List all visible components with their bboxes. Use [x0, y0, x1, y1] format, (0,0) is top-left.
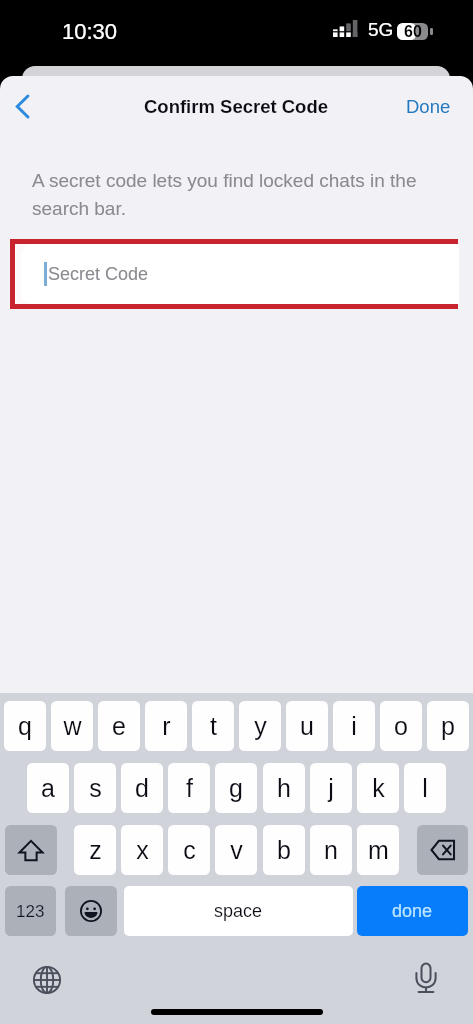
staticText: m	[368, 836, 389, 864]
staticText: t	[210, 712, 217, 740]
staticText: d	[135, 774, 149, 802]
staticText: c	[183, 836, 196, 864]
staticText: 10:30	[62, 19, 118, 44]
button[interactable]: Numbers	[5, 886, 56, 936]
button[interactable]: Emoji	[65, 886, 117, 936]
staticText: r	[162, 712, 171, 740]
button[interactable]: Shift	[5, 825, 57, 875]
staticText: l	[422, 774, 428, 802]
staticText: space	[214, 901, 263, 921]
button[interactable]: n	[310, 825, 352, 875]
staticText: o	[394, 712, 408, 740]
button[interactable]: w	[51, 701, 93, 751]
staticText: n	[324, 836, 338, 864]
button[interactable]: c	[168, 825, 210, 875]
button[interactable]: u	[286, 701, 328, 751]
button[interactable]: m	[357, 825, 399, 875]
button[interactable]: e	[98, 701, 140, 751]
staticText: 60	[404, 23, 422, 40]
button[interactable]: g	[215, 763, 257, 813]
button[interactable]: Back	[0, 76, 44, 136]
staticText: a	[41, 774, 55, 802]
button[interactable]: x	[121, 825, 163, 875]
staticText: s	[89, 774, 102, 802]
staticText: 123	[16, 902, 45, 921]
staticText: h	[277, 774, 291, 802]
button[interactable]: b	[263, 825, 305, 875]
staticText: f	[186, 774, 193, 802]
staticText: z	[89, 836, 102, 864]
staticText: j	[328, 774, 334, 802]
staticText: i	[351, 712, 357, 740]
button[interactable]: l	[404, 763, 446, 813]
button[interactable]: Change keyboard	[27, 960, 67, 1000]
staticText: Secret Code	[48, 264, 149, 284]
button[interactable]: h	[263, 763, 305, 813]
staticText: x	[136, 836, 149, 864]
staticText: k	[372, 774, 385, 802]
staticText: w	[63, 712, 82, 740]
staticText: e	[112, 712, 126, 740]
button[interactable]: d	[121, 763, 163, 813]
staticText: 5G	[368, 19, 394, 40]
button[interactable]: v	[215, 825, 257, 875]
button[interactable]: j	[310, 763, 352, 813]
button[interactable]: s	[74, 763, 116, 813]
button[interactable]: t	[192, 701, 234, 751]
staticText: u	[300, 712, 314, 740]
button[interactable]: Delete	[417, 825, 468, 875]
button[interactable]: Secret Code	[15, 244, 453, 304]
staticText: A secret code lets you find locked chats…	[32, 170, 424, 219]
button[interactable]: o	[380, 701, 422, 751]
staticText: v	[230, 836, 243, 864]
staticText: y	[254, 712, 267, 740]
button[interactable]: z	[74, 825, 116, 875]
button[interactable]: k	[357, 763, 399, 813]
button[interactable]: r	[145, 701, 187, 751]
staticText: p	[441, 712, 455, 740]
button[interactable]: a	[27, 763, 69, 813]
button[interactable]: Dictate	[406, 958, 446, 998]
button[interactable]: q	[4, 701, 46, 751]
button[interactable]: y	[239, 701, 281, 751]
button[interactable]: i	[333, 701, 375, 751]
staticText: Done	[406, 96, 451, 117]
button[interactable]: space	[124, 886, 353, 936]
button[interactable]: Done	[398, 90, 459, 123]
button[interactable]: f	[168, 763, 210, 813]
button[interactable]: p	[427, 701, 469, 751]
staticText: done	[392, 901, 433, 921]
button[interactable]: done	[357, 886, 468, 936]
staticText: Confirm Secret Code	[144, 96, 329, 117]
staticText: q	[18, 712, 32, 740]
staticText: g	[229, 774, 243, 802]
staticText: b	[277, 836, 291, 864]
